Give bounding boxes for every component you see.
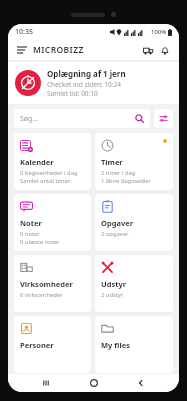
button[interactable]: Opgaver <box>95 194 173 251</box>
staticText: Opgaver <box>101 218 134 228</box>
staticText: Samlet tid: 00:10 <box>47 89 98 98</box>
staticText: Virksomheder <box>20 279 73 289</box>
staticText: My files <box>101 340 130 350</box>
staticText: Udstyr <box>101 279 127 289</box>
staticText: 2 timer i dag <box>101 169 136 177</box>
staticText: 0 ulæste noter <box>20 238 60 246</box>
staticText: 10:35 <box>15 27 33 37</box>
staticText: Oplægning af 1 jern <box>47 68 126 79</box>
button[interactable]: Virksomheder <box>14 255 91 312</box>
staticText: Checket ind siden: 10:24 <box>47 80 121 89</box>
button[interactable]: My files <box>95 316 173 373</box>
button[interactable]: Recents <box>36 374 56 392</box>
staticText: Samlet antal timer: 00:00 <box>20 177 86 185</box>
staticText: 2 opgaver <box>101 230 129 238</box>
button[interactable]: Kalender <box>14 133 91 190</box>
button[interactable]: Noter <box>14 194 91 251</box>
button[interactable]: Oplægning af 1 jern <box>8 62 179 104</box>
staticText: 100% <box>151 28 167 36</box>
button[interactable]: Back <box>131 374 151 392</box>
button[interactable]: Udstyr <box>95 255 173 312</box>
staticText: 6 virksomheder <box>20 291 63 299</box>
staticText: Timer <box>101 157 123 167</box>
staticText: Søg... <box>20 114 39 124</box>
button[interactable]: Timer <box>95 133 173 190</box>
button[interactable]: Menu <box>15 43 29 57</box>
staticText: 0 begivenheder i dag <box>20 169 78 177</box>
button[interactable]: Personer <box>14 316 91 373</box>
button[interactable]: Filter <box>154 109 173 128</box>
button[interactable]: Søg... <box>14 109 150 128</box>
staticText: Personer <box>20 340 54 350</box>
button[interactable]: Home <box>84 374 104 392</box>
staticText: Noter <box>20 218 42 228</box>
staticText: 1 åbne dagssedler <box>101 177 151 185</box>
staticText: 0 noter <box>20 230 40 238</box>
staticText: MICROBIZZ <box>33 44 84 56</box>
staticText: Kalender <box>20 157 54 167</box>
staticText: 2 udstyr <box>101 291 124 299</box>
button[interactable]: Notifications <box>157 43 172 58</box>
button[interactable]: Vehicles <box>140 43 155 58</box>
